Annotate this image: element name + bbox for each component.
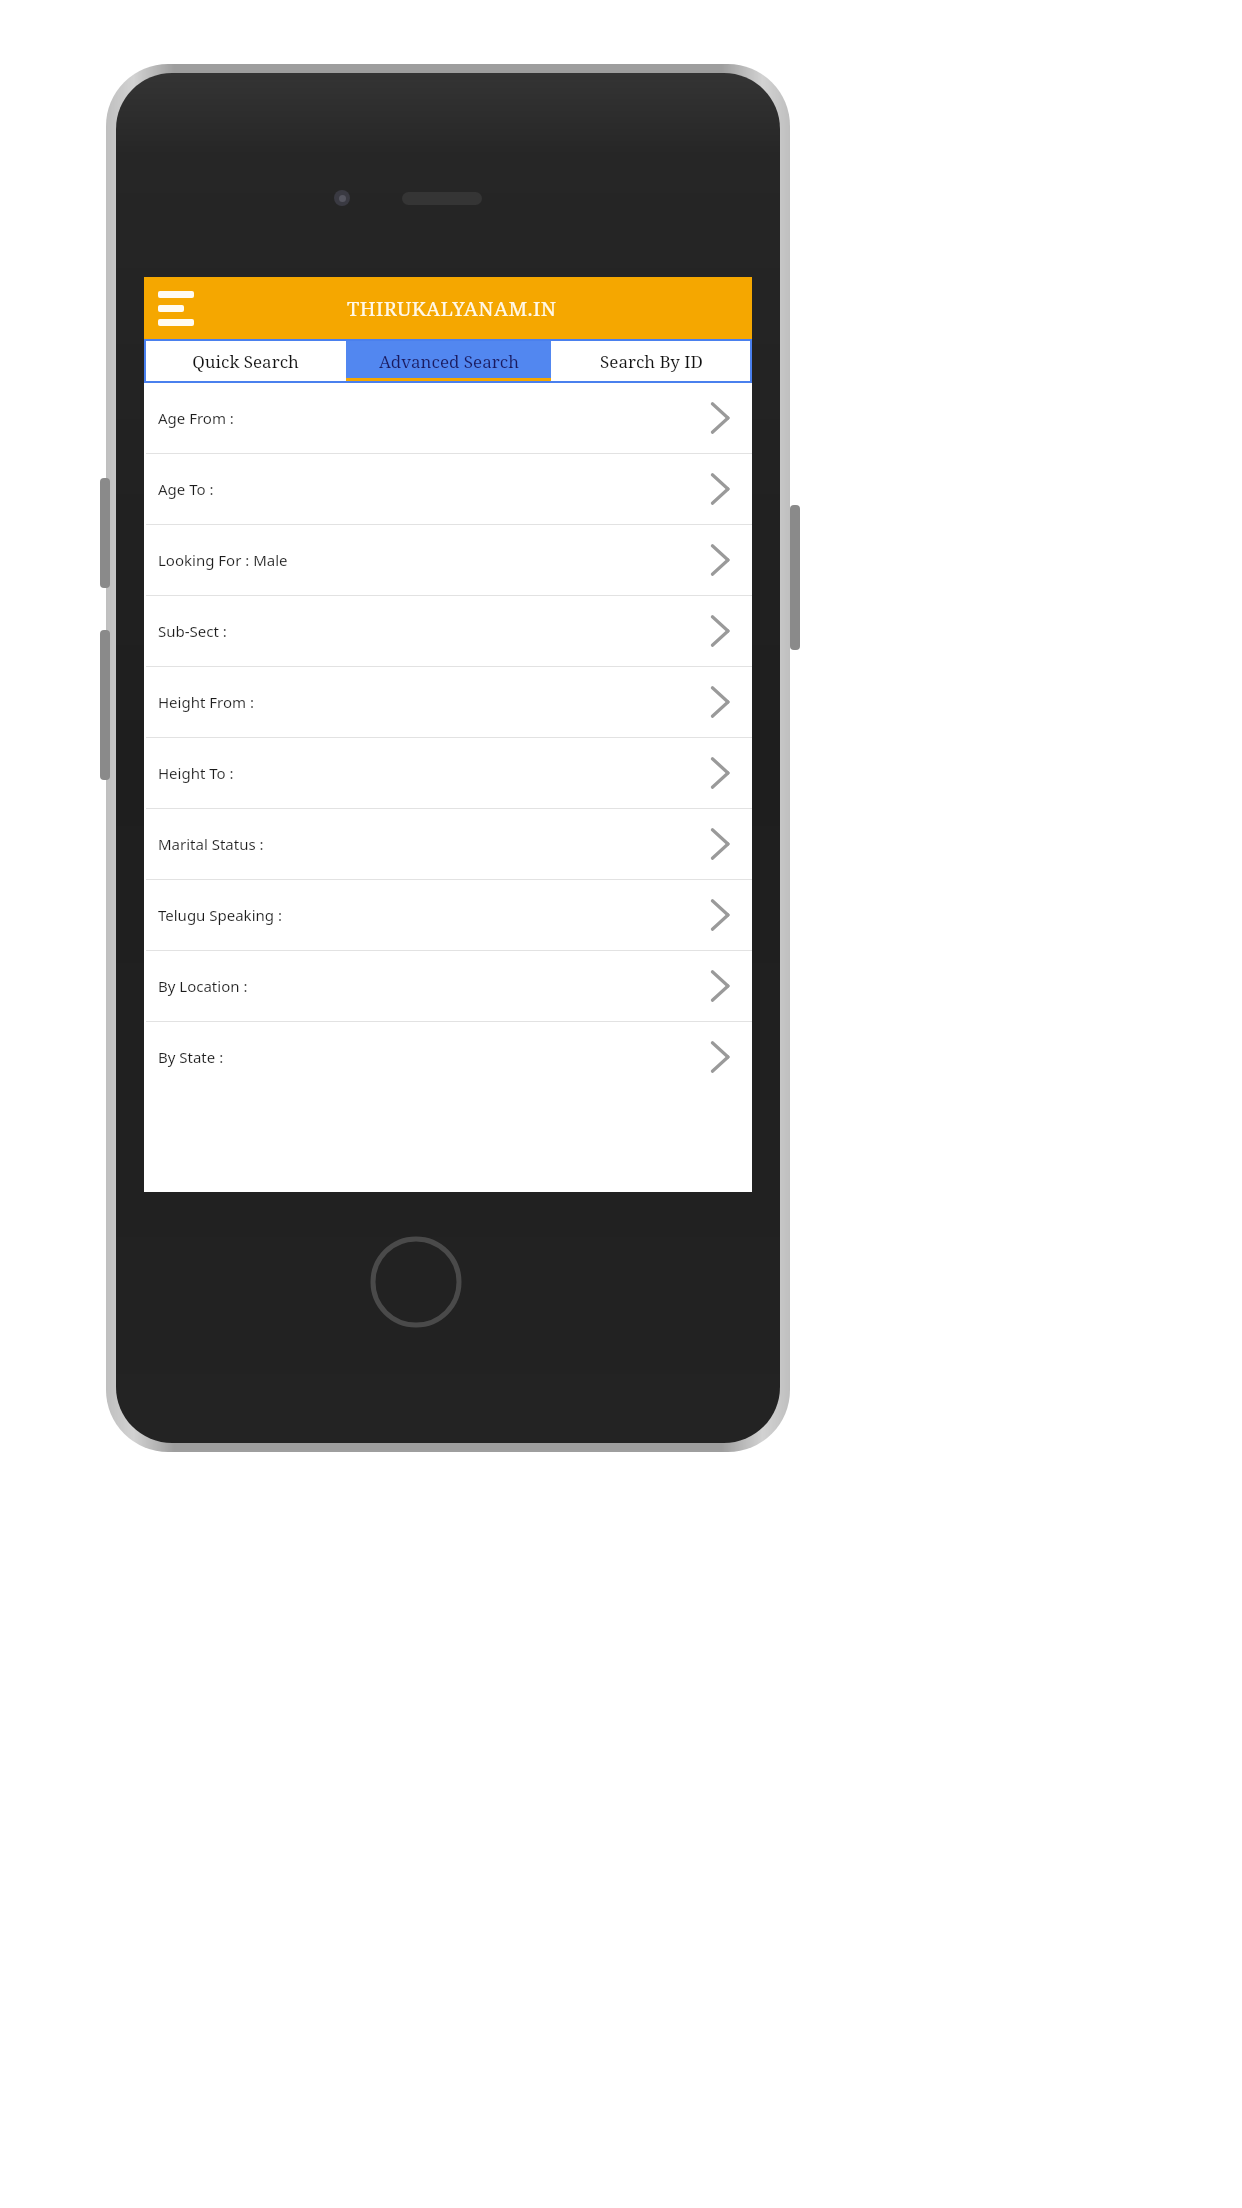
button[interactable]: Quick Search [144,339,346,383]
staticText: By State : [158,1047,224,1067]
staticText: Marital Status : [158,834,264,854]
button[interactable]: Telugu Speaking : [144,880,752,950]
staticText: THIRUKALYANAM.IN [347,295,557,322]
button[interactable]: Height From : [144,667,752,737]
staticText: Age To : [158,479,214,499]
button[interactable]: Advanced Search [346,339,551,383]
button[interactable]: Age From : [144,383,752,453]
staticText: Height To : [158,763,234,783]
staticText: By Location : [158,976,248,996]
staticText: Advanced Search [379,350,519,373]
staticText: Search By ID [600,350,703,373]
button[interactable]: Looking For : Male [144,525,752,595]
staticText: Looking For : Male [158,550,288,570]
button[interactable]: Height To : [144,738,752,808]
button[interactable]: Marital Status : [144,809,752,879]
button[interactable]: Search By ID [551,339,752,383]
staticText: Quick Search [192,350,299,373]
button[interactable]: By Location : [144,951,752,1021]
button[interactable]: Open navigation menu [158,285,204,331]
button[interactable]: Sub-Sect : [144,596,752,666]
button[interactable]: By State : [144,1022,752,1092]
staticText: Sub-Sect : [158,621,227,641]
button[interactable]: Age To : [144,454,752,524]
staticText: Age From : [158,408,234,428]
staticText: Height From : [158,692,254,712]
staticText: Telugu Speaking : [158,905,282,925]
